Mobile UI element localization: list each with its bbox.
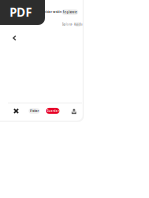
button[interactable]: Compartir xyxy=(69,106,79,116)
button[interactable]: Iniciar sesión xyxy=(44,9,61,15)
staticText: PDF xyxy=(9,4,32,20)
staticText: Ayuda xyxy=(74,23,82,26)
button[interactable]: Regístrate xyxy=(62,9,78,15)
staticText: Regístrate xyxy=(62,10,77,14)
button[interactable]: Guardar xyxy=(46,108,59,114)
button[interactable]: Atrás xyxy=(9,32,20,43)
button[interactable]: Visitar xyxy=(28,108,40,114)
button[interactable]: Cerrar xyxy=(11,105,22,116)
staticText: Explorar xyxy=(62,23,72,26)
staticText: Visitar xyxy=(30,109,39,113)
staticText: · xyxy=(72,21,73,27)
staticText: Guardar xyxy=(47,109,59,113)
button[interactable]: Ayuda xyxy=(75,22,81,27)
staticText: Iniciar sesión xyxy=(43,10,62,14)
button[interactable]: Explorar xyxy=(62,22,71,27)
